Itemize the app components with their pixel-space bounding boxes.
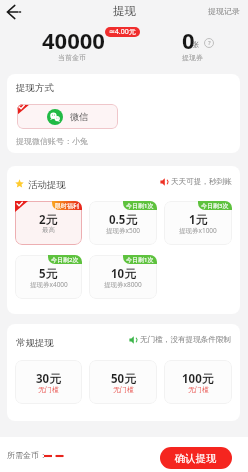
button[interactable]: 微信 <box>17 104 118 129</box>
button[interactable]: 100元 <box>164 360 232 404</box>
staticText: 常规提现 <box>16 337 54 349</box>
staticText: 30元 <box>36 371 61 387</box>
staticText: 提现券x500 <box>106 226 141 235</box>
button[interactable]: 10元 <box>89 255 157 299</box>
staticText: 无门槛 <box>38 385 59 394</box>
staticText: 2元 <box>39 212 58 228</box>
staticText: 张 <box>192 40 199 49</box>
button[interactable]: 提现记录 <box>208 6 248 16</box>
staticText: ≈4.00元 <box>109 27 136 37</box>
button[interactable]: 30元 <box>15 360 82 404</box>
staticText: 所需金币： <box>7 450 47 460</box>
staticText: 今日剩1次 <box>126 202 154 210</box>
button[interactable]: 1元 <box>164 201 232 245</box>
staticText: 当前金币 <box>58 53 86 62</box>
staticText: 5元 <box>39 266 58 282</box>
staticText: 提现券x4000 <box>30 280 68 289</box>
staticText: 0.5元 <box>109 212 137 228</box>
staticText: ? <box>208 39 211 47</box>
staticText: 今日剩2次 <box>51 256 79 264</box>
staticText: 10元 <box>111 266 136 282</box>
button[interactable]: 0.5元 <box>89 201 157 245</box>
staticText: 50元 <box>111 371 136 387</box>
staticText: 提现券 <box>182 53 203 62</box>
staticText: 无门槛，没有提现条件限制 <box>140 335 232 345</box>
staticText: 40000 <box>42 25 105 55</box>
staticText: 100元 <box>182 371 214 387</box>
staticText: 1元 <box>189 212 208 228</box>
staticText: 提现微信账号：小兔 <box>16 136 88 146</box>
staticText: 提现方式 <box>16 82 54 94</box>
staticText: 活动提现 <box>28 179 66 191</box>
button[interactable]: Back <box>0 0 28 24</box>
staticText: 提现 <box>113 4 136 18</box>
staticText: 无门槛 <box>188 385 209 394</box>
staticText: 提现券x8000 <box>104 280 142 289</box>
button[interactable]: Help <box>204 38 214 48</box>
staticText: 确认提现 <box>175 452 217 465</box>
staticText: 0 <box>182 25 195 55</box>
staticText: 最高 <box>42 226 55 234</box>
staticText: 天天可提，秒到账 <box>171 177 232 187</box>
button[interactable]: 50元 <box>89 360 157 404</box>
button[interactable]: 5元 <box>15 255 82 299</box>
staticText: 今日剩1次 <box>126 256 154 264</box>
staticText: 微信 <box>70 111 89 123</box>
staticText: 限时福利 <box>55 202 79 210</box>
button[interactable]: 确认提现 <box>160 447 232 469</box>
staticText: 提现券x1000 <box>179 226 217 235</box>
button[interactable]: 2元 <box>15 201 82 245</box>
staticText: 无门槛 <box>113 385 134 394</box>
staticText: 今日剩3次 <box>201 202 229 210</box>
